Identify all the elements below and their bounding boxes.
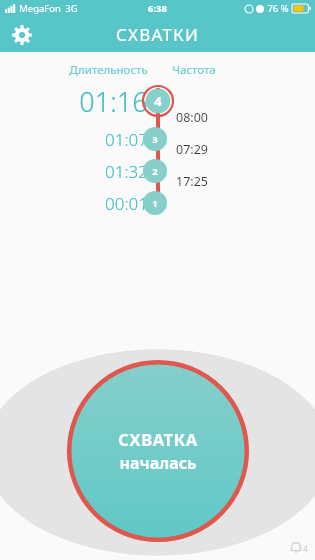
staticText: 6:38 — [148, 2, 167, 15]
staticText: началась — [119, 452, 197, 474]
button[interactable]: 01:07 — [0, 124, 315, 154]
staticText: 76 % — [267, 2, 289, 15]
staticText: MegaFon — [19, 2, 61, 15]
staticText: 17:25 — [176, 173, 208, 189]
staticText: СХВАТКИ — [116, 23, 199, 46]
button[interactable]: 07:29 — [176, 141, 208, 157]
staticText: 4 — [154, 92, 162, 110]
staticText: 1 — [152, 197, 158, 210]
staticText: 01:07 — [105, 128, 148, 151]
button[interactable]: 17:25 — [176, 173, 208, 189]
staticText: 07:29 — [176, 141, 208, 157]
staticText: 00:01 — [105, 192, 148, 215]
button[interactable]: Settings — [6, 19, 38, 51]
button[interactable]: 01:16 — [0, 82, 315, 120]
staticText: 3 — [152, 133, 158, 146]
staticText: 4 — [303, 543, 308, 554]
staticText: 2 — [152, 165, 158, 178]
button[interactable]: 01:32 — [0, 156, 315, 186]
staticText: 01:32 — [105, 160, 148, 183]
button[interactable]: 08:00 — [176, 109, 208, 125]
staticText: 3G — [65, 2, 78, 15]
staticText: СХВАТКА — [118, 428, 198, 450]
staticText: Частота — [172, 62, 216, 78]
staticText: Длительность — [69, 62, 148, 78]
staticText: 01:16 — [79, 83, 148, 120]
button[interactable]: 00:01 — [0, 188, 315, 218]
button[interactable]: СХВАТКА — [67, 360, 249, 542]
staticText: 08:00 — [176, 109, 208, 125]
button[interactable]: Notifications — [289, 540, 308, 554]
